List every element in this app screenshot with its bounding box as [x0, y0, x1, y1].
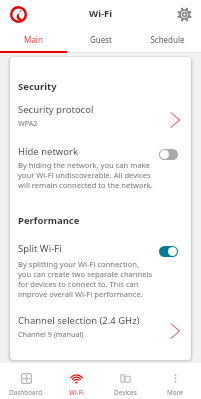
button[interactable]: Split Wi-Fi: [18, 242, 178, 255]
staticText: Schedule: [150, 34, 185, 45]
staticText: Channel 9 (manual): [18, 329, 84, 339]
staticText: By hiding the network, you can make your…: [18, 160, 153, 190]
button[interactable]: Hide network: [18, 145, 178, 158]
staticText: Dashboard: [9, 388, 43, 397]
staticText: Main: [24, 34, 43, 45]
staticText: Split Wi-Fi: [18, 242, 159, 255]
button[interactable]: Dashboard: [3, 363, 49, 399]
staticText: Wi-Fi: [89, 7, 113, 20]
button[interactable]: Security protocol: [18, 103, 178, 128]
button[interactable]: Wi-Fi: [53, 363, 99, 399]
button[interactable]: Main: [0, 27, 67, 51]
button[interactable]: Devices: [102, 363, 148, 399]
staticText: Security: [18, 80, 57, 93]
staticText: Channel selection (2.4 GHz): [18, 314, 140, 327]
staticText: Performance: [18, 214, 80, 227]
button[interactable]: Channel selection (2.4 GHz): [18, 314, 178, 339]
button[interactable]: Vodafone home: [6, 2, 30, 26]
button[interactable]: Schedule: [134, 27, 201, 51]
button[interactable]: Settings: [173, 3, 195, 25]
staticText: Wi-Fi: [69, 388, 84, 397]
staticText: By splitting your Wi-Fi connection, you …: [18, 259, 153, 299]
staticText: Devices: [114, 388, 137, 397]
button[interactable]: Guest: [67, 27, 134, 51]
button[interactable]: More: [152, 363, 198, 399]
staticText: Guest: [90, 34, 112, 45]
staticText: Hide network: [18, 145, 159, 158]
staticText: WPA2: [18, 118, 38, 128]
staticText: More: [167, 388, 183, 397]
staticText: Security protocol: [18, 103, 94, 116]
